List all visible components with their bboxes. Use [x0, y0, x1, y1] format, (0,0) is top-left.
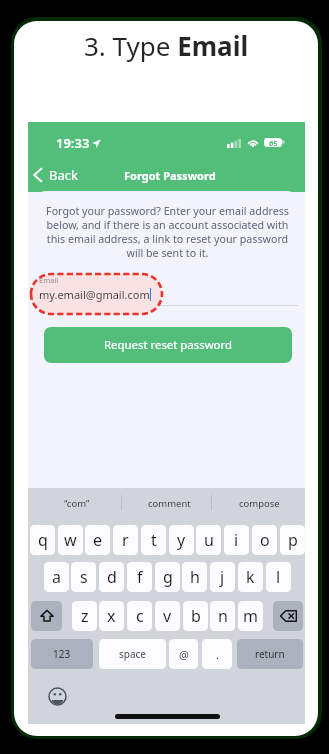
staticText: 19:33: [56, 134, 90, 152]
button[interactable]: h: [182, 562, 207, 592]
button[interactable]: l: [266, 562, 291, 592]
staticText: d: [107, 566, 117, 588]
staticText: b: [191, 605, 201, 627]
staticText: f: [137, 566, 143, 588]
staticText: a: [52, 566, 61, 588]
button[interactable]: Back: [33, 163, 78, 187]
button[interactable]: r: [113, 525, 138, 555]
button[interactable]: g: [155, 562, 180, 592]
staticText: Request reset password: [104, 337, 232, 353]
button[interactable]: u: [196, 525, 221, 555]
button[interactable]: s: [71, 562, 96, 592]
button[interactable]: d: [99, 562, 124, 592]
button[interactable]: x: [99, 601, 124, 631]
staticText: t: [151, 529, 157, 551]
other: Backspace: [280, 610, 297, 622]
staticText: l: [276, 566, 281, 588]
staticText: comment: [148, 497, 191, 510]
staticText: y: [177, 529, 186, 551]
staticText: o: [260, 529, 270, 551]
staticText: n: [218, 605, 228, 627]
staticText: 123: [53, 647, 71, 661]
staticText: m: [243, 605, 258, 627]
staticText: w: [64, 529, 77, 551]
staticText: q: [38, 529, 48, 551]
staticText: j: [220, 566, 225, 588]
button[interactable]: b: [183, 601, 208, 631]
button[interactable]: “com”: [37, 488, 117, 518]
staticText: return: [255, 647, 285, 661]
staticText: @: [179, 647, 189, 662]
staticText: Email: [39, 275, 59, 285]
button[interactable]: c: [127, 601, 152, 631]
button[interactable]: w: [58, 525, 83, 555]
button[interactable]: e: [85, 525, 110, 555]
button[interactable]: Emoji keyboard: [48, 687, 67, 706]
staticText: r: [122, 529, 129, 551]
button[interactable]: p: [280, 525, 305, 555]
button[interactable]: q: [30, 525, 55, 555]
staticText: p: [288, 529, 298, 551]
button[interactable]: f: [127, 562, 152, 592]
staticText: e: [93, 529, 103, 551]
button[interactable]: z: [72, 601, 97, 631]
staticText: 65: [269, 138, 278, 147]
staticText: space: [119, 647, 146, 661]
staticText: my.email@gmail.com: [39, 287, 150, 302]
staticText: “com”: [64, 497, 90, 510]
staticText: g: [163, 566, 173, 588]
staticText: z: [81, 605, 89, 627]
staticText: .: [216, 647, 219, 662]
button[interactable]: comment: [129, 488, 209, 518]
staticText: compose: [239, 497, 280, 510]
staticText: h: [190, 566, 200, 588]
staticText: k: [246, 566, 255, 588]
button[interactable]: Request reset password: [44, 327, 292, 363]
button[interactable]: Backspace: [273, 601, 303, 631]
staticText: v: [163, 605, 172, 627]
button[interactable]: t: [141, 525, 166, 555]
button[interactable]: space: [99, 639, 166, 669]
button[interactable]: v: [155, 601, 180, 631]
button[interactable]: i: [224, 525, 249, 555]
button[interactable]: n: [210, 601, 235, 631]
button[interactable]: compose: [219, 488, 299, 518]
button[interactable]: k: [238, 562, 263, 592]
staticText: x: [107, 605, 116, 627]
staticText: Forgot Password: [124, 168, 216, 183]
button[interactable]: 123: [31, 639, 93, 669]
staticText: 3. Type Email: [84, 28, 249, 63]
button[interactable]: return: [237, 639, 303, 669]
button[interactable]: .: [202, 639, 232, 669]
staticText: u: [204, 529, 214, 551]
button[interactable]: o: [252, 525, 277, 555]
staticText: Forgot your password? Enter your email a…: [46, 204, 289, 260]
button[interactable]: @: [169, 639, 198, 669]
staticText: i: [234, 529, 239, 551]
other: Shift: [40, 609, 54, 623]
staticText: c: [136, 605, 144, 627]
staticText: s: [80, 566, 88, 588]
button[interactable]: y: [169, 525, 194, 555]
button[interactable]: Email: [39, 272, 179, 306]
staticText: Back: [49, 166, 78, 184]
button[interactable]: Shift: [31, 601, 62, 631]
button[interactable]: j: [210, 562, 235, 592]
button[interactable]: a: [44, 562, 69, 592]
button[interactable]: m: [238, 601, 263, 631]
